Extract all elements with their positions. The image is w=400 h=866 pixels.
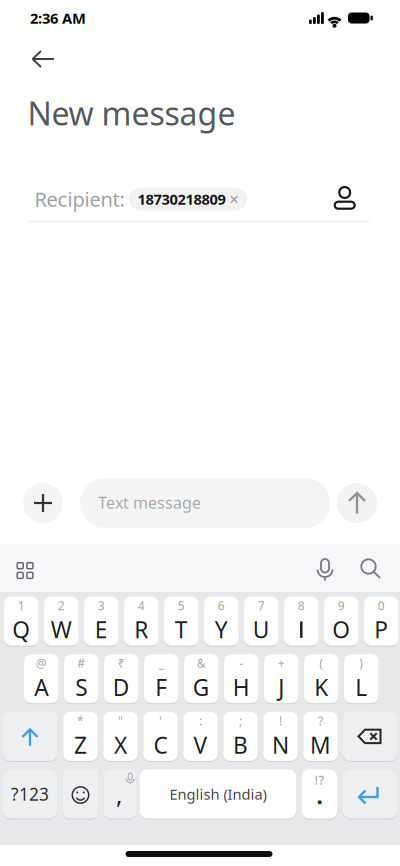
button[interactable]: ! — [263, 712, 298, 761]
staticText: & — [197, 655, 206, 671]
button[interactable]: Send — [337, 483, 377, 523]
staticText: Q — [12, 614, 30, 644]
staticText: Y — [215, 614, 228, 644]
staticText: 18730218809 — [137, 189, 225, 209]
staticText: 5 — [178, 597, 185, 613]
button[interactable]: 3 — [84, 596, 118, 645]
staticText: ₹ — [118, 655, 125, 671]
button[interactable]: : — [183, 712, 218, 761]
button[interactable]: 18730218809 — [129, 187, 247, 210]
staticText: 2 — [58, 597, 65, 613]
staticText: * — [77, 713, 84, 729]
staticText: J — [278, 672, 284, 702]
staticText: U — [253, 614, 270, 644]
staticText: : — [199, 713, 202, 729]
staticText: T — [175, 614, 188, 644]
staticText: M — [310, 730, 331, 760]
button[interactable]: Period — [302, 769, 337, 818]
button[interactable]: 0 — [364, 596, 399, 645]
staticText: # — [77, 655, 85, 671]
button[interactable]: ' — [143, 712, 178, 761]
staticText: C — [153, 730, 167, 760]
button[interactable]: Text message — [80, 478, 330, 528]
staticText: S — [75, 672, 87, 702]
staticText: × — [229, 188, 238, 210]
staticText: , — [116, 779, 122, 810]
staticText: K — [314, 672, 328, 702]
button[interactable]: 2 — [44, 596, 78, 645]
button[interactable]: * — [63, 712, 98, 761]
button[interactable]: Delete — [343, 712, 397, 761]
staticText: B — [233, 730, 248, 760]
button[interactable]: 8 — [284, 596, 319, 645]
staticText: V — [193, 730, 207, 760]
button[interactable]: Add attachment — [23, 483, 63, 523]
staticText: 2:36 AM — [30, 8, 86, 28]
staticText: Recipient: — [34, 186, 124, 212]
button[interactable]: 5 — [164, 596, 199, 645]
button[interactable]: & — [184, 654, 219, 703]
staticText: - — [239, 655, 243, 671]
button[interactable]: Emoji — [62, 769, 98, 818]
staticText: 3 — [98, 597, 105, 613]
button[interactable]: " — [103, 712, 138, 761]
button[interactable]: ₹ — [104, 654, 138, 703]
staticText: P — [374, 614, 388, 644]
button[interactable]: 9 — [324, 596, 359, 645]
button[interactable]: Back — [0, 0, 400, 866]
staticText: English (India) — [169, 784, 266, 804]
staticText: _ — [159, 655, 164, 671]
button[interactable]: 7 — [244, 596, 279, 645]
staticText: R — [134, 614, 148, 644]
staticText: ; — [239, 713, 242, 729]
button[interactable]: Space — [140, 769, 296, 818]
staticText: O — [332, 614, 350, 644]
staticText: N — [272, 730, 289, 760]
staticText: ?123 — [11, 782, 49, 805]
staticText: New message — [27, 92, 235, 134]
button[interactable]: _ — [144, 654, 179, 703]
staticText: " — [118, 713, 123, 729]
staticText: ' — [159, 713, 162, 729]
button[interactable]: Voice input — [308, 555, 341, 585]
button[interactable]: 6 — [204, 596, 239, 645]
button[interactable]: ; — [223, 712, 258, 761]
staticText: 9 — [338, 597, 345, 613]
staticText: 4 — [138, 597, 145, 613]
button[interactable]: @ — [24, 654, 58, 703]
staticText: L — [355, 672, 367, 702]
staticText: A — [34, 672, 48, 702]
staticText: Z — [74, 730, 87, 760]
button[interactable]: ) — [344, 654, 379, 703]
button[interactable]: Choose contact — [323, 181, 367, 215]
button[interactable]: Symbols — [3, 769, 57, 818]
button[interactable]: # — [64, 654, 98, 703]
button[interactable]: Return — [343, 769, 397, 818]
button[interactable]: Search — [354, 553, 387, 586]
button[interactable]: Keyboard options — [8, 554, 41, 587]
button[interactable]: ? — [303, 712, 338, 761]
button[interactable]: Comma — [103, 769, 136, 818]
staticText: ? — [318, 713, 323, 729]
staticText: 1 — [18, 597, 25, 613]
staticText: 0 — [378, 597, 385, 613]
staticText: F — [155, 672, 167, 702]
staticText: G — [193, 672, 210, 702]
staticText: 8 — [298, 597, 305, 613]
staticText: ) — [359, 655, 363, 671]
button[interactable]: Shift — [3, 712, 57, 761]
staticText: 6 — [218, 597, 225, 613]
staticText: . — [316, 780, 322, 810]
staticText: E — [95, 614, 108, 644]
staticText: @ — [36, 655, 47, 671]
button[interactable]: + — [264, 654, 299, 703]
staticText: D — [113, 672, 130, 702]
button[interactable]: 4 — [124, 596, 159, 645]
button[interactable]: ( — [304, 654, 339, 703]
staticText: 7 — [258, 597, 265, 613]
staticText: ( — [319, 655, 323, 671]
button[interactable]: - — [224, 654, 259, 703]
button[interactable]: 1 — [4, 596, 39, 645]
staticText: !? — [314, 771, 324, 788]
staticText: X — [114, 730, 127, 760]
